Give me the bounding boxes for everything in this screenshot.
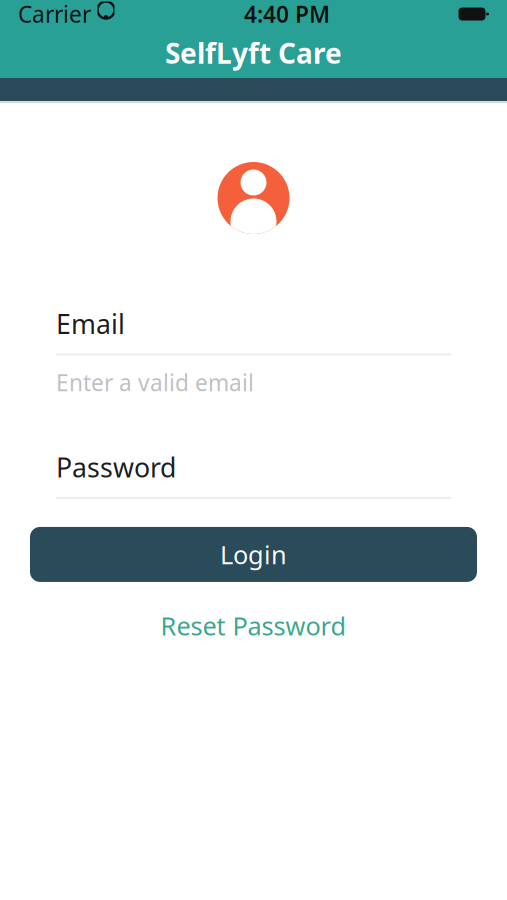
staticText: SelfLyft Care: [165, 34, 342, 72]
button[interactable]: Reset Password: [144, 601, 362, 650]
staticText: Enter a valid email: [56, 367, 254, 397]
staticText: Reset Password: [160, 609, 346, 642]
staticText: Login: [220, 538, 287, 571]
staticText: Carrier: [18, 0, 91, 29]
staticText: Email: [56, 306, 125, 341]
staticText: 4:40 PM: [244, 0, 330, 29]
button[interactable]: Login: [30, 527, 477, 582]
staticText: Password: [56, 449, 176, 485]
